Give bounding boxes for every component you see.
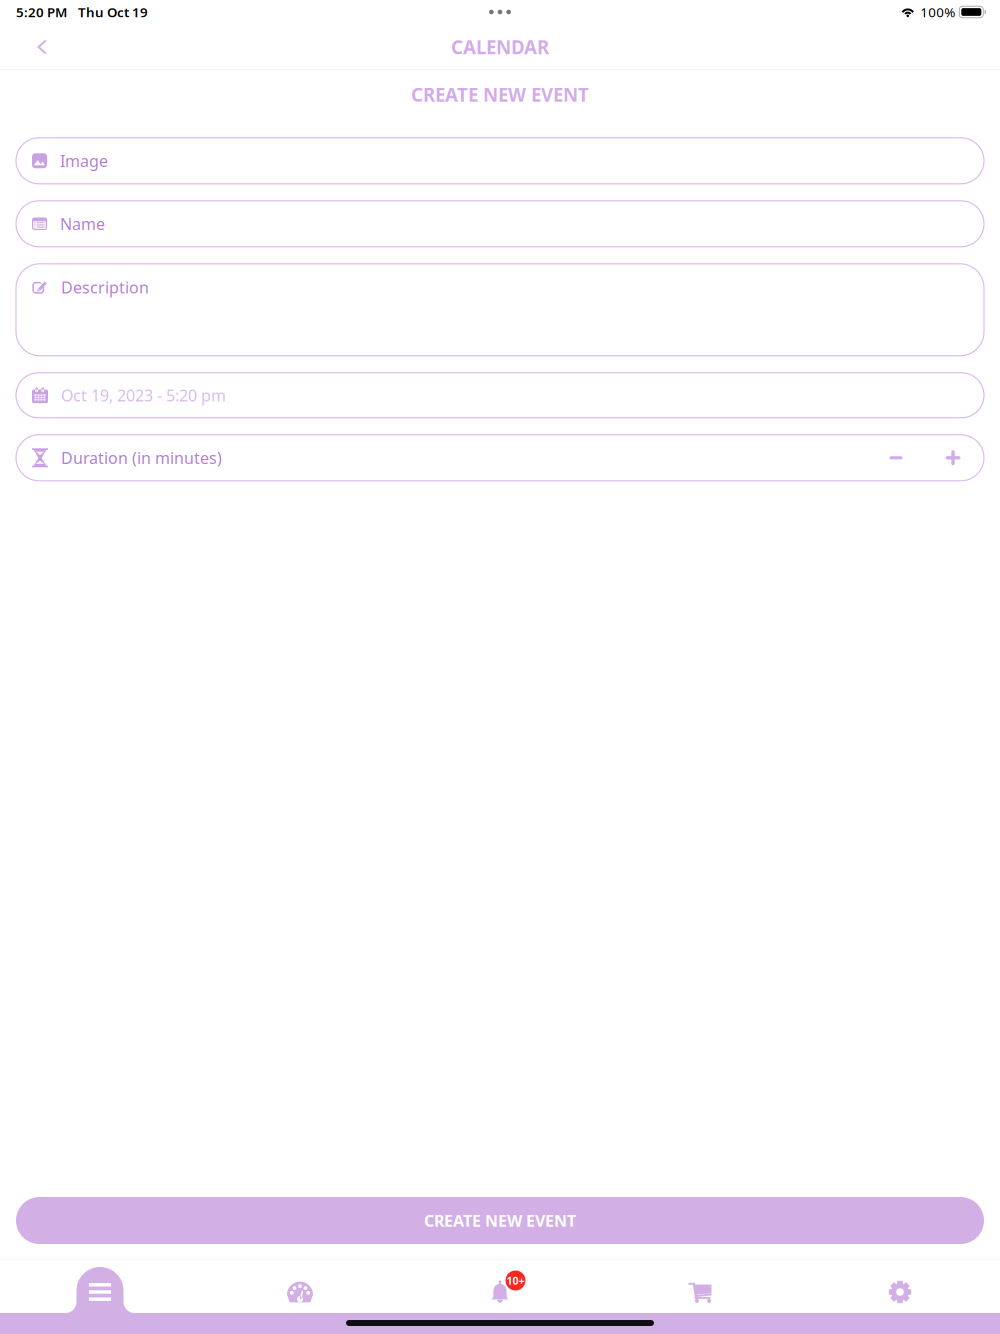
staticText: Duration (in minutes) <box>61 447 222 468</box>
staticText: Thu Oct 19 <box>78 3 148 21</box>
button[interactable]: Name <box>16 201 984 247</box>
staticText: 10+ <box>506 1273 524 1288</box>
button[interactable]: Back <box>21 24 67 70</box>
button[interactable]: Decrease duration <box>874 436 918 480</box>
staticText: CREATE NEW EVENT <box>411 82 589 107</box>
button[interactable]: Settings <box>800 1259 1000 1325</box>
button[interactable]: Menu <box>0 1259 200 1325</box>
staticText: 5:20 PM <box>16 3 67 21</box>
staticText: CALENDAR <box>451 35 549 59</box>
staticText: Image <box>60 150 108 171</box>
button[interactable]: Notifications <box>400 1259 600 1325</box>
staticText: Name <box>60 213 105 234</box>
button[interactable]: Oct 19, 2023 - 5:20 pm <box>16 373 984 418</box>
staticText: CREATE NEW EVENT <box>424 1210 576 1231</box>
button[interactable]: Cart <box>600 1259 800 1325</box>
button[interactable]: Description <box>16 264 984 356</box>
button[interactable]: Dashboard <box>200 1259 400 1325</box>
staticText: 100% <box>920 3 955 21</box>
staticText: Oct 19, 2023 - 5:20 pm <box>61 385 226 406</box>
button[interactable]: Increase duration <box>931 436 975 480</box>
button[interactable]: Image <box>16 138 984 184</box>
staticText: Description <box>61 277 149 298</box>
button[interactable]: CREATE NEW EVENT <box>0 1197 1000 1244</box>
